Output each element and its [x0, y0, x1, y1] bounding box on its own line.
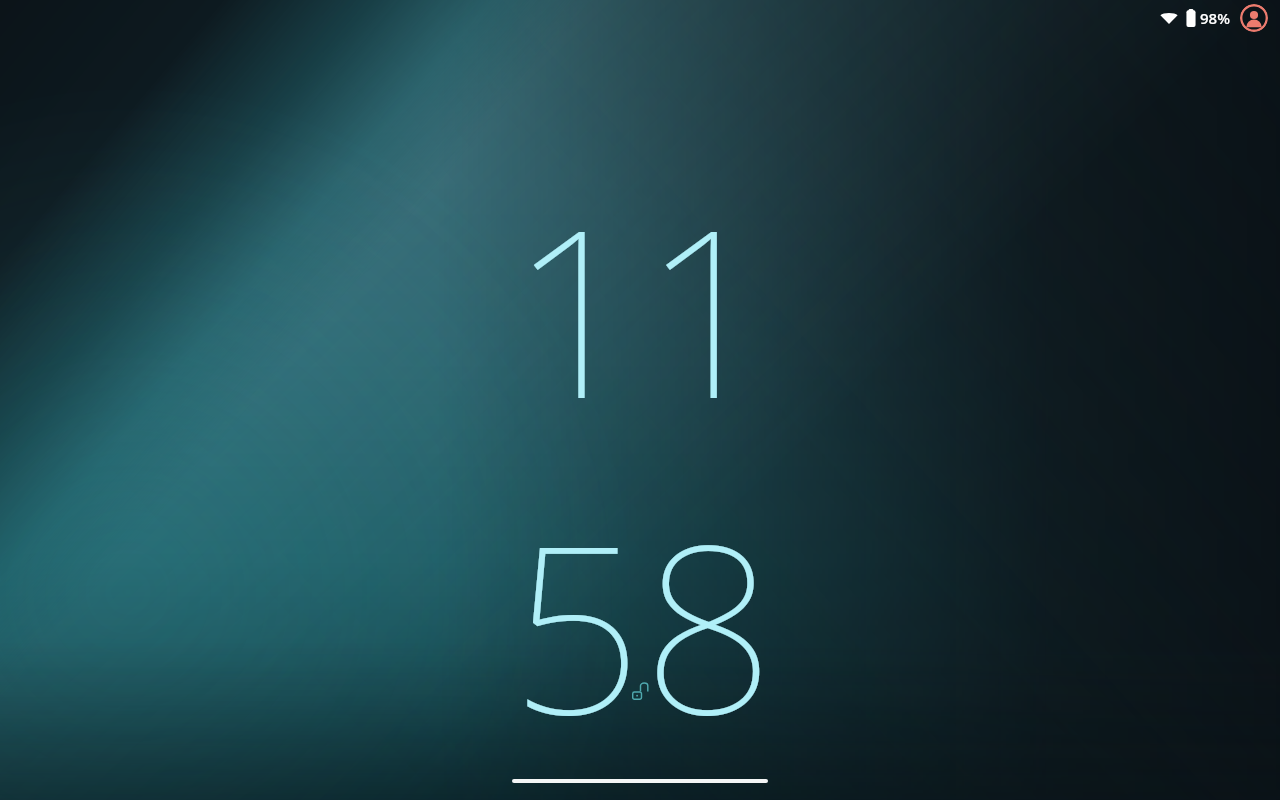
button[interactable]: Unlock	[620, 670, 660, 710]
staticText: 58	[510, 466, 775, 782]
button[interactable]: 11	[510, 150, 775, 782]
button[interactable]: Switch user	[1240, 4, 1268, 32]
staticText: 11	[510, 150, 775, 466]
staticText: 98%	[1200, 8, 1230, 28]
button[interactable]: Home	[512, 779, 768, 783]
